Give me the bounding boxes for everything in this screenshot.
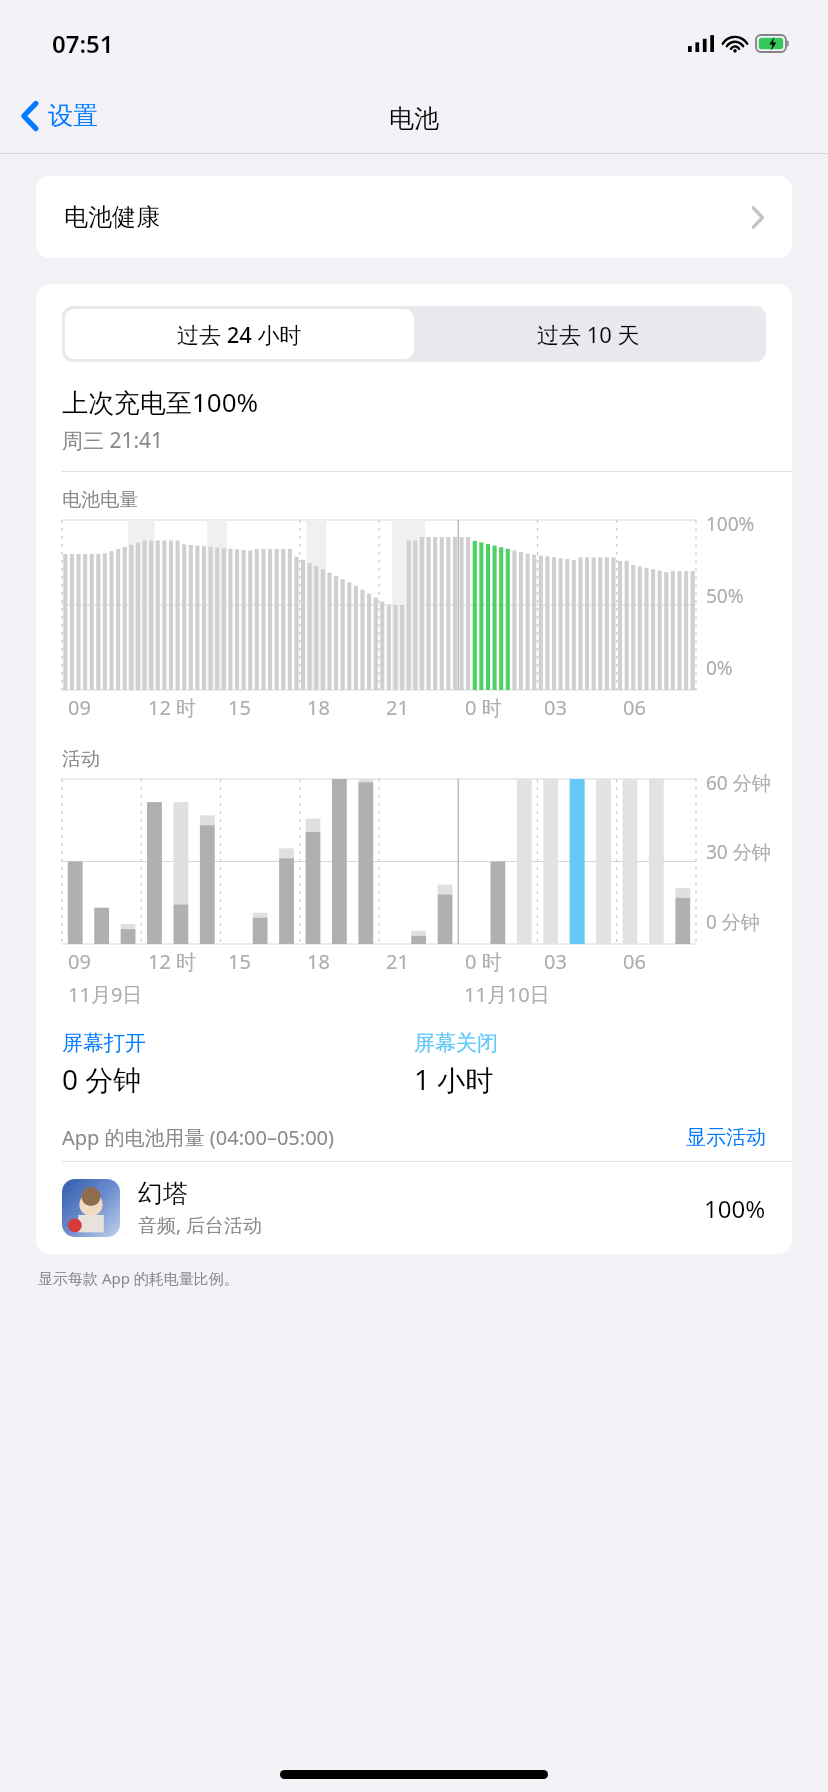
- staticText: 过去 10 天: [537, 319, 640, 349]
- staticText: 0 分钟: [706, 909, 760, 935]
- staticText: 电池健康: [64, 202, 160, 232]
- staticText: 电池: [389, 103, 439, 134]
- button[interactable]: 设置: [0, 92, 112, 139]
- staticText: 上次充电至100%: [62, 384, 259, 420]
- staticText: 30 分钟: [706, 839, 771, 865]
- staticText: App 的电池用量 (04:00–05:00): [62, 1124, 335, 1151]
- staticText: 幻塔: [138, 1178, 188, 1209]
- button[interactable]: 显示活动: [686, 1125, 766, 1150]
- staticText: 21: [386, 694, 409, 721]
- staticText: 电池电量: [62, 488, 138, 512]
- staticText: 音频, 后台活动: [138, 1212, 263, 1238]
- staticText: 100%: [704, 1192, 766, 1225]
- staticText: 18: [307, 948, 330, 975]
- button[interactable]: 幻塔: [36, 1162, 792, 1254]
- staticText: 07:51: [52, 27, 114, 60]
- staticText: 21: [386, 948, 409, 975]
- staticText: 设置: [48, 100, 98, 131]
- staticText: 0 时: [465, 694, 502, 721]
- staticText: 15: [228, 694, 251, 721]
- staticText: 50%: [706, 583, 744, 609]
- staticText: 11月10日: [464, 981, 550, 1008]
- staticText: 显示活动: [686, 1125, 766, 1150]
- button[interactable]: 过去 24 小时: [65, 309, 414, 359]
- staticText: 09: [68, 694, 91, 721]
- staticText: 0 时: [465, 948, 502, 975]
- staticText: 屏幕打开: [62, 1030, 146, 1056]
- staticText: 0%: [706, 655, 733, 681]
- staticText: 06: [623, 948, 646, 975]
- staticText: 周三 21:41: [62, 426, 164, 455]
- staticText: 活动: [62, 747, 100, 771]
- staticText: 03: [544, 948, 567, 975]
- staticText: 12 时: [148, 948, 197, 975]
- staticText: 12 时: [148, 694, 197, 721]
- staticText: 09: [68, 948, 91, 975]
- staticText: 过去 24 小时: [177, 319, 302, 349]
- staticText: 1 小时: [414, 1060, 494, 1098]
- staticText: 0 分钟: [62, 1060, 142, 1098]
- button[interactable]: 过去 10 天: [414, 309, 763, 359]
- staticText: 15: [228, 948, 251, 975]
- staticText: 03: [544, 694, 567, 721]
- staticText: 显示每款 App 的耗电量比例。: [38, 1268, 239, 1288]
- button[interactable]: 电池健康: [36, 176, 792, 258]
- staticText: 屏幕关闭: [414, 1030, 498, 1056]
- staticText: 100%: [706, 511, 755, 537]
- staticText: 18: [307, 694, 330, 721]
- staticText: 11月9日: [68, 981, 143, 1008]
- staticText: 60 分钟: [706, 770, 771, 796]
- staticText: 06: [623, 694, 646, 721]
